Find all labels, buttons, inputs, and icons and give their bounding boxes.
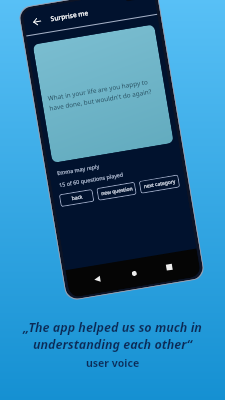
- button[interactable]: next category: [139, 174, 180, 194]
- button[interactable]: new question: [96, 182, 137, 201]
- staticText: next category: [143, 178, 177, 190]
- staticText: back: [71, 194, 83, 202]
- button[interactable]: back: [59, 189, 94, 207]
- staticText: „The app helped us so much in understand…: [23, 319, 202, 352]
- staticText: 15 of 60 questions played: [59, 170, 124, 188]
- button[interactable]: Recents: [161, 259, 177, 275]
- staticText: Emma may reply: [57, 162, 100, 176]
- button[interactable]: Back: [29, 14, 44, 29]
- button[interactable]: Home: [126, 265, 142, 281]
- staticText: Surprise me: [50, 8, 89, 23]
- button[interactable]: Back: [89, 271, 105, 287]
- staticText: new question: [101, 185, 133, 197]
- staticText: user voice: [86, 356, 140, 370]
- staticText: What in your life are you happy to have …: [47, 76, 160, 113]
